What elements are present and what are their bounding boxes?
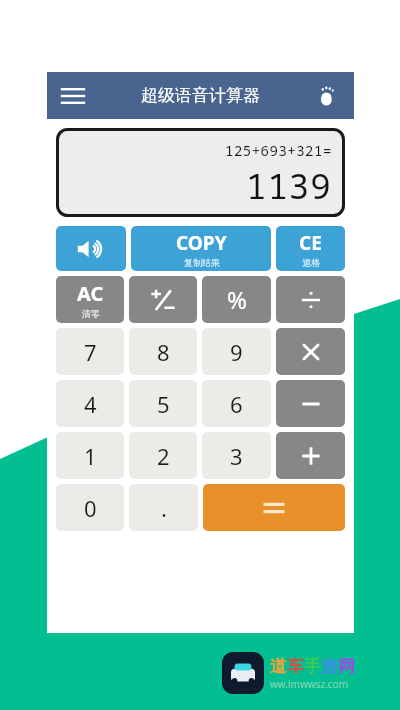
staticText: AC xyxy=(77,280,104,307)
other: Plus xyxy=(299,444,323,468)
staticText: 1139 xyxy=(246,163,332,209)
staticText: 清零 xyxy=(82,308,100,319)
button[interactable]: 1 xyxy=(56,432,124,479)
staticText: COPY xyxy=(176,230,227,256)
staticText: 网 xyxy=(338,656,355,677)
button[interactable]: Equals xyxy=(203,484,345,531)
staticText: 车 xyxy=(287,656,304,677)
button[interactable]: 5 xyxy=(129,380,197,427)
other: Equals xyxy=(259,499,289,517)
staticText: 游 xyxy=(321,656,338,677)
staticText: % xyxy=(227,283,247,316)
button[interactable]: 6 xyxy=(202,380,271,427)
staticText: 0 xyxy=(84,493,97,523)
button[interactable] xyxy=(129,276,197,323)
button[interactable]: Plus xyxy=(276,432,345,479)
button[interactable]: % xyxy=(202,276,271,323)
staticText: 8 xyxy=(157,337,170,367)
staticText: 5 xyxy=(157,389,170,419)
other: Multiply xyxy=(300,341,322,363)
button[interactable]: AC xyxy=(56,276,124,323)
button[interactable]: CE xyxy=(276,226,345,271)
staticText: CE xyxy=(299,230,322,256)
button[interactable]: 8 xyxy=(129,328,197,375)
staticText: 3 xyxy=(230,441,243,471)
staticText: 125+693+321= xyxy=(225,141,332,160)
staticText: 2 xyxy=(157,441,170,471)
staticText: ww.imwwsz.com xyxy=(270,677,349,691)
button[interactable]: 9 xyxy=(202,328,271,375)
other: Divide xyxy=(299,288,323,312)
staticText: 超级语音计算器 xyxy=(141,85,260,106)
button[interactable]: Speak result xyxy=(56,226,126,271)
button[interactable]: 7 xyxy=(56,328,124,375)
other: Minus xyxy=(299,392,323,416)
staticText: 4 xyxy=(84,389,97,419)
button[interactable]: Multiply xyxy=(276,328,345,375)
button[interactable]: 3 xyxy=(202,432,271,479)
staticText: 手 xyxy=(304,656,321,677)
button[interactable]: Menu xyxy=(55,78,91,114)
staticText: 退格 xyxy=(302,257,320,268)
button[interactable]: Divide xyxy=(276,276,345,323)
button[interactable]: Footprint xyxy=(310,79,344,113)
staticText: . xyxy=(161,493,167,523)
button[interactable]: . xyxy=(129,484,198,531)
button[interactable]: Minus xyxy=(276,380,345,427)
staticText: 1 xyxy=(84,441,97,471)
staticText: 7 xyxy=(84,337,97,367)
button[interactable]: 2 xyxy=(129,432,197,479)
button[interactable]: 4 xyxy=(56,380,124,427)
staticText: 道 xyxy=(270,656,287,677)
staticText: 复制结果 xyxy=(184,257,220,268)
other: Speak result xyxy=(76,238,106,260)
staticText: 9 xyxy=(230,337,243,367)
button[interactable]: COPY xyxy=(131,226,271,271)
button[interactable]: 0 xyxy=(56,484,124,531)
staticText: 6 xyxy=(230,389,243,419)
